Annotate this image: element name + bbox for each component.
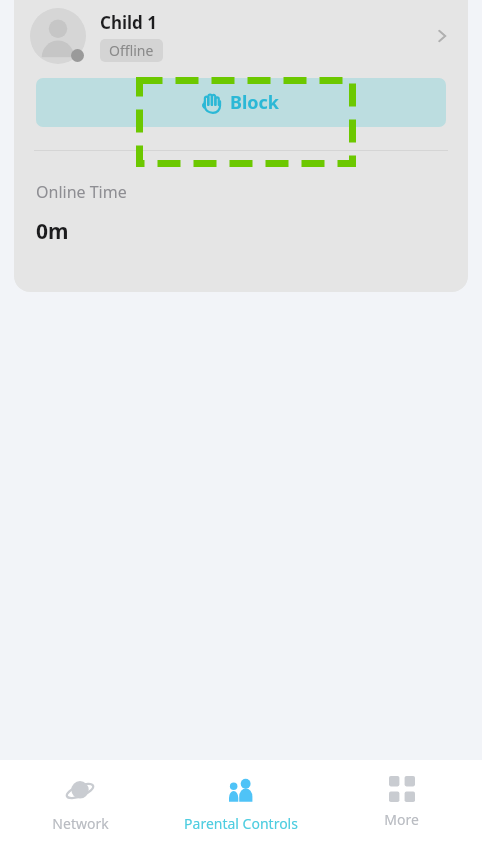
staticText: More	[384, 810, 419, 829]
staticText: Child 1	[100, 11, 158, 34]
staticText: Block	[230, 90, 280, 115]
other: Parental Controls	[226, 776, 256, 806]
button[interactable]: Block	[36, 78, 446, 127]
button[interactable]: Parental Controls	[160, 760, 321, 866]
button[interactable]: Network	[0, 760, 160, 866]
staticText: Offline	[109, 41, 154, 60]
staticText: Online Time	[36, 181, 127, 203]
button[interactable]: Child 1	[14, 0, 468, 72]
button[interactable]: More	[321, 760, 482, 866]
other: More	[389, 776, 415, 802]
other: Network	[65, 776, 95, 806]
other: Block	[202, 92, 223, 113]
staticText: Parental Controls	[184, 814, 298, 833]
staticText: Network	[52, 814, 109, 833]
staticText: 0m	[36, 217, 69, 246]
